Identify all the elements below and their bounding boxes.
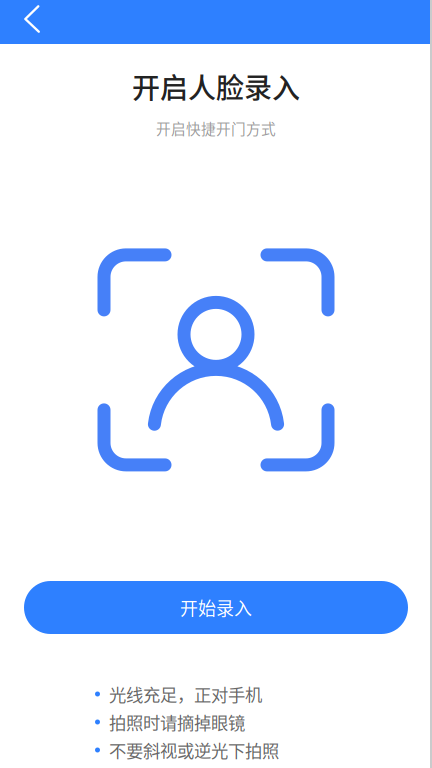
button[interactable]: 返回 <box>0 0 56 44</box>
staticText: 开启快捷开门方式 <box>156 117 276 139</box>
staticText: 不要斜视或逆光下拍照 <box>109 737 279 763</box>
staticText: 拍照时请摘掉眼镜 <box>109 709 245 735</box>
staticText: 开启人脸录入 <box>132 66 300 106</box>
button[interactable]: 开始录入 <box>24 581 408 634</box>
staticText: 开始录入 <box>180 594 252 621</box>
staticText: 光线充足，正对手机 <box>109 681 262 707</box>
